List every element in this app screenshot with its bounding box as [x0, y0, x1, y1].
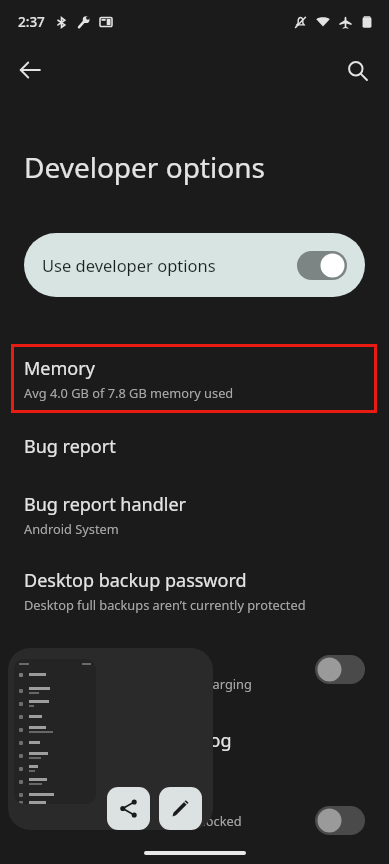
staticText: Screen will never sleep while charging	[24, 675, 252, 692]
staticText: 2:37	[18, 13, 45, 31]
button[interactable]: Screenshot preview	[14, 659, 96, 804]
button[interactable]: Allow the bootloader to be unlocked	[0, 790, 389, 850]
staticText: Bluetooth HCI snoop log	[24, 728, 232, 753]
staticText: Stay awake	[24, 647, 119, 672]
staticText: Desktop full backups aren’t currently pr…	[24, 596, 306, 613]
staticText: Use developer options	[42, 254, 216, 276]
button[interactable]: Bug report handler	[0, 482, 389, 546]
button[interactable]: Share	[107, 787, 150, 830]
staticText: Avg 4.0 GB of 7.8 GB memory used	[24, 384, 234, 401]
button[interactable]: Memory	[11, 344, 377, 413]
staticText: Bug report handler	[24, 492, 187, 517]
staticText: Memory	[24, 356, 95, 381]
button[interactable]: Use developer options	[24, 233, 365, 297]
staticText: Android System	[24, 520, 119, 537]
staticText: Developer options	[24, 148, 265, 186]
button[interactable]: Back	[8, 48, 52, 92]
button[interactable]: Search	[335, 48, 379, 92]
staticText: Bug report	[24, 434, 116, 459]
button[interactable]: Bluetooth HCI snoop log	[0, 717, 389, 763]
staticText: Allow the bootloader to be unlocked	[24, 812, 242, 829]
button[interactable]: Desktop backup password	[0, 558, 389, 622]
staticText: Desktop backup password	[24, 568, 247, 593]
button[interactable]: Stay awake	[0, 637, 389, 701]
button[interactable]: Bug report	[0, 423, 389, 469]
button[interactable]: Edit	[159, 787, 202, 830]
